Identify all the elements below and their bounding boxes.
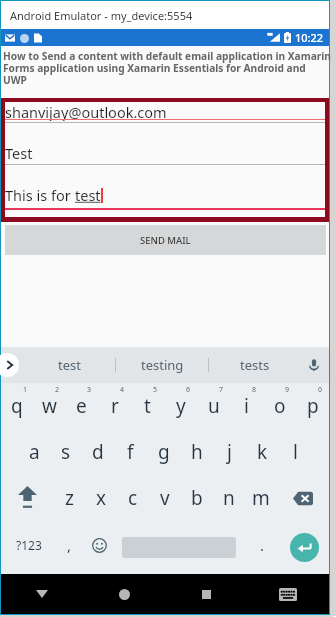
button[interactable]: e (65, 383, 98, 429)
button[interactable]: h (180, 429, 213, 475)
button[interactable]: p (296, 383, 329, 429)
staticText: 9 (285, 385, 290, 395)
button[interactable]: k (246, 429, 279, 475)
staticText: o (274, 393, 286, 419)
staticText: Test (5, 143, 33, 163)
staticText: j (227, 439, 232, 465)
staticText: z (65, 485, 74, 511)
button[interactable]: Shift (1, 475, 53, 521)
staticText: SEND MAIL (140, 234, 191, 247)
staticText: Forms application using Xamarin Essentia… (3, 61, 306, 75)
button[interactable]: n (213, 475, 245, 521)
staticText: k (257, 439, 268, 465)
button[interactable]: testing (116, 347, 208, 383)
button[interactable]: Enter (290, 533, 319, 562)
button[interactable]: y (164, 383, 197, 429)
staticText: ?123 (16, 537, 42, 553)
staticText: q (11, 393, 23, 419)
button[interactable]: q (1, 383, 33, 429)
staticText: v (160, 485, 170, 511)
button[interactable]: l (279, 429, 312, 475)
staticText: 5 (153, 385, 158, 395)
button[interactable]: ?123 (1, 521, 57, 569)
button[interactable]: Home (83, 574, 165, 614)
staticText: g (158, 439, 170, 465)
button[interactable]: m (245, 475, 277, 521)
button[interactable]: Voice input (303, 354, 325, 376)
staticText: 7 (219, 385, 224, 395)
staticText: shanvijay@outlook.com (5, 102, 167, 121)
staticText: 0 (318, 385, 323, 395)
staticText: d (92, 439, 104, 465)
button[interactable]: g (147, 429, 180, 475)
button[interactable]: test (23, 347, 115, 383)
button[interactable]: v (149, 475, 181, 521)
button[interactable]: z (53, 475, 85, 521)
staticText: 2 (55, 385, 60, 395)
button[interactable]: Show more suggestions (0, 353, 19, 377)
button[interactable]: Recent apps (165, 574, 247, 614)
button[interactable]: x (85, 475, 117, 521)
button[interactable]: a (18, 429, 50, 475)
staticText: p (307, 393, 319, 419)
staticText: tests (240, 356, 270, 374)
staticText: Android Emulator - my_device:5554 (10, 8, 193, 23)
button[interactable]: w (33, 383, 65, 429)
staticText: w (42, 393, 57, 419)
staticText: r (111, 393, 119, 419)
staticText: test (58, 356, 81, 374)
staticText: n (223, 485, 235, 511)
staticText: h (191, 439, 203, 465)
staticText: u (208, 393, 220, 419)
button[interactable]: d (82, 429, 114, 475)
staticText: 4 (120, 385, 125, 395)
button[interactable]: f (114, 429, 147, 475)
staticText: How to Send a content with default email… (3, 49, 331, 63)
button[interactable]: b (181, 475, 213, 521)
staticText: e (76, 393, 87, 419)
staticText: . (260, 535, 265, 555)
staticText: l (293, 439, 298, 465)
staticText: y (176, 393, 186, 419)
button[interactable]: t (131, 383, 164, 429)
staticText: a (29, 439, 40, 465)
button[interactable]: o (263, 383, 296, 429)
button[interactable]: s (50, 429, 82, 475)
staticText: test (75, 185, 101, 205)
button[interactable]: j (213, 429, 246, 475)
staticText: This is for (5, 185, 75, 205)
button[interactable]: SEND MAIL (5, 225, 326, 255)
staticText: i (244, 393, 249, 419)
staticText: m (252, 485, 270, 511)
staticText: , (67, 535, 72, 555)
staticText: 3 (87, 385, 92, 395)
staticText: t (144, 393, 151, 419)
staticText: testing (141, 356, 184, 374)
staticText: 6 (186, 385, 191, 395)
button[interactable]: Hide keyboard (247, 574, 329, 614)
button[interactable]: Backspace (277, 475, 329, 521)
staticText: f (127, 439, 134, 465)
button[interactable]: u (197, 383, 230, 429)
button[interactable]: Back (1, 574, 83, 614)
button[interactable]: . (248, 521, 276, 569)
staticText: 10:22 (295, 30, 324, 45)
button[interactable]: r (98, 383, 131, 429)
button[interactable]: tests (209, 347, 301, 383)
staticText: UWP (3, 73, 27, 87)
button[interactable]: , (55, 521, 83, 569)
staticText: x (96, 485, 107, 511)
staticText: c (128, 485, 138, 511)
staticText: 1 (23, 385, 28, 395)
staticText: s (61, 439, 71, 465)
staticText: 8 (252, 385, 257, 395)
button[interactable]: Emoji (85, 521, 113, 569)
button[interactable]: i (230, 383, 263, 429)
button[interactable]: c (117, 475, 149, 521)
staticText: b (191, 485, 203, 511)
